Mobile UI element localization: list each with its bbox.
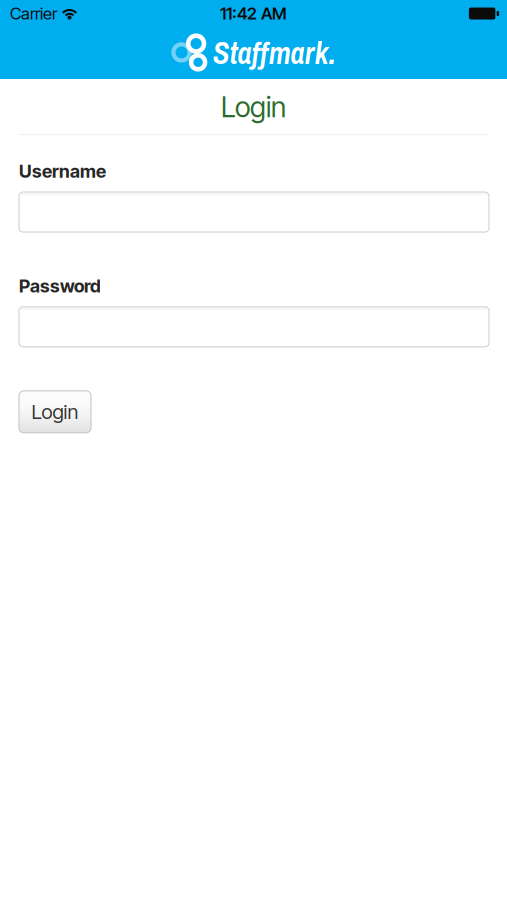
staticText: Staffmark. <box>212 32 335 74</box>
button[interactable]: Username text field <box>19 192 489 232</box>
staticText: Carrier <box>10 3 57 24</box>
button[interactable]: Password text field <box>19 307 489 347</box>
staticText: 11:42 AM <box>220 3 287 24</box>
staticText: Password <box>19 275 101 297</box>
staticText: Login <box>221 90 286 124</box>
button[interactable]: Login <box>19 391 91 433</box>
staticText: Login <box>31 400 78 424</box>
staticText: Username <box>19 160 106 182</box>
